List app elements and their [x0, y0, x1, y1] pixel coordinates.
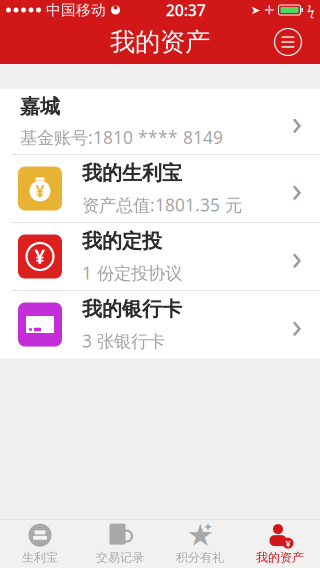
staticText: ★: [186, 518, 213, 552]
staticText: 20:37: [166, 0, 206, 21]
staticText: 我的定投: [82, 229, 162, 253]
button[interactable]: 生利宝: [0, 520, 80, 568]
staticText: 积分有礼: [176, 550, 224, 565]
staticText: ✦: [203, 520, 213, 534]
staticText: ✛: [264, 3, 274, 17]
button[interactable]: ¥: [0, 155, 320, 222]
staticText: 交易记录: [96, 550, 144, 565]
staticText: ➤: [250, 3, 260, 17]
button[interactable]: 嘉城: [0, 89, 320, 154]
staticText: 1 份定投协议: [82, 261, 182, 284]
staticText: 中国移动: [46, 1, 106, 19]
staticText: 我的资产: [110, 26, 210, 57]
staticText: ›: [291, 98, 302, 144]
staticText: ¥: [285, 537, 290, 549]
staticText: 我的资产: [256, 550, 304, 565]
staticText: ›: [291, 165, 302, 211]
button[interactable]: ¥: [240, 520, 320, 568]
staticText: 嘉城: [20, 94, 60, 119]
staticText: ϟ: [307, 1, 314, 19]
button[interactable]: 菜单: [266, 20, 310, 64]
staticText: 3 张银行卡: [82, 329, 165, 352]
button[interactable]: ★: [160, 520, 240, 568]
staticText: ›: [291, 301, 302, 347]
staticText: 资产总值:1801.35 元: [82, 193, 242, 216]
staticText: 我的银行卡: [82, 297, 182, 321]
staticText: 生利宝: [22, 550, 58, 565]
staticText: ›: [291, 233, 302, 279]
staticText: 我的生利宝: [82, 161, 182, 185]
button[interactable]: ¥: [0, 223, 320, 290]
staticText: 基金账号:1810 **** 8149: [20, 126, 223, 149]
staticText: ¥: [35, 180, 44, 202]
button[interactable]: 我的银行卡: [0, 291, 320, 358]
button[interactable]: 交易记录: [80, 520, 160, 568]
staticText: ¥: [34, 244, 45, 269]
